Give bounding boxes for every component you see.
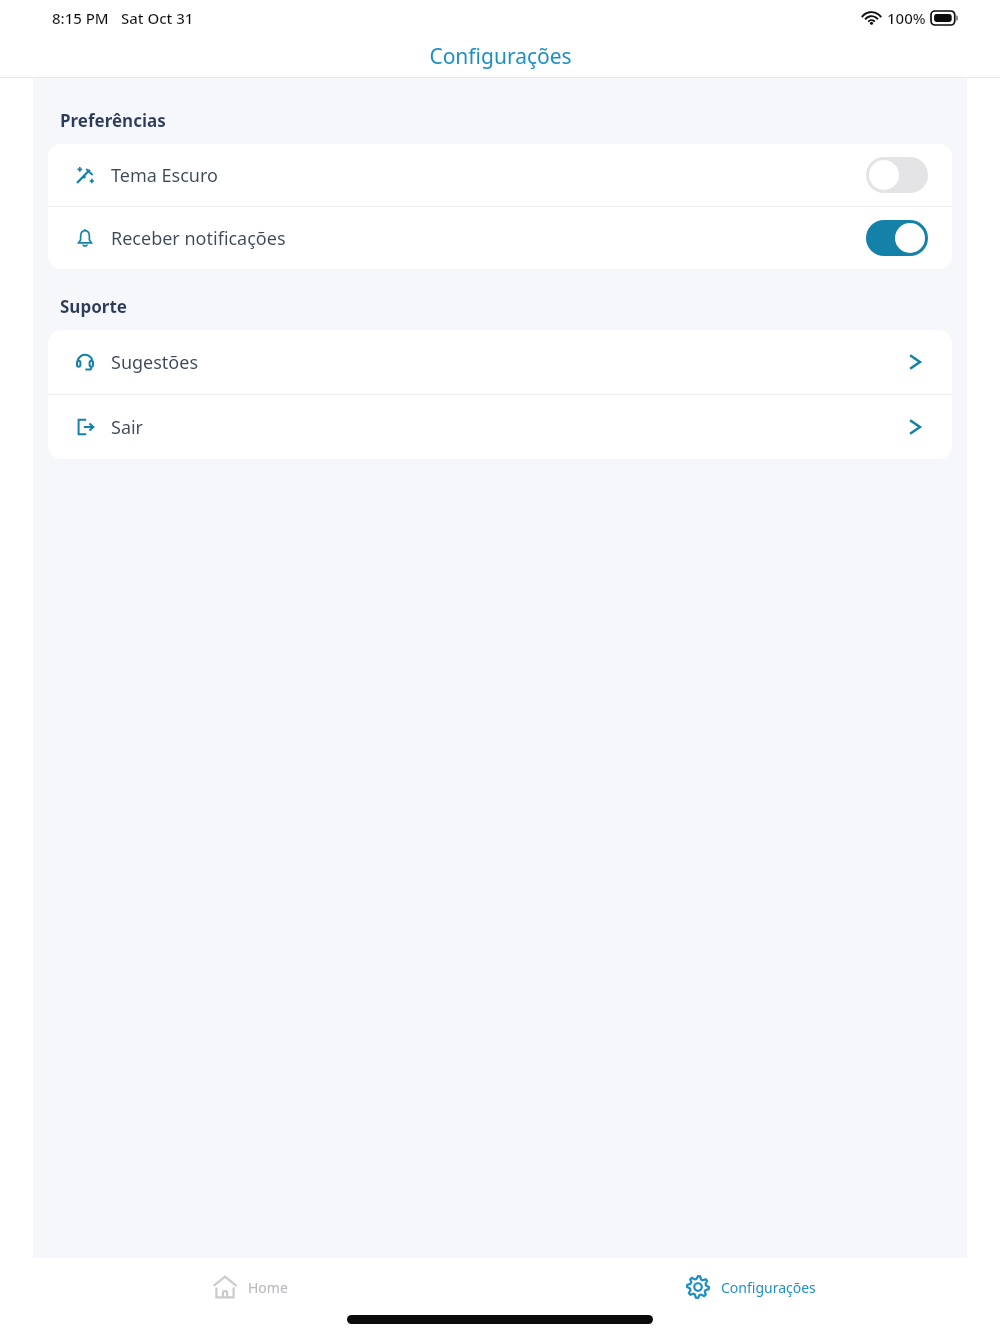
button[interactable]: Sair — [48, 395, 952, 459]
button[interactable]: Off — [866, 157, 928, 193]
button[interactable]: Receber notificações — [48, 207, 952, 269]
staticText: Home — [248, 1278, 288, 1297]
button[interactable]: Tema Escuro — [48, 144, 952, 206]
button[interactable]: Home — [0, 1258, 500, 1316]
staticText: Preferências — [60, 109, 166, 132]
staticText: Suporte — [60, 295, 127, 318]
staticText: Tema Escuro — [111, 163, 218, 188]
button[interactable]: On — [866, 220, 928, 256]
staticText: 100% — [887, 8, 926, 28]
staticText: Sat Oct 31 — [121, 8, 194, 28]
staticText: Sugestões — [111, 350, 199, 375]
button[interactable]: Sugestões — [48, 330, 952, 394]
staticText: 8:15 PM — [52, 8, 109, 28]
staticText: Configurações — [721, 1278, 816, 1297]
staticText: Receber notificações — [111, 226, 286, 251]
staticText: Sair — [111, 415, 144, 440]
button[interactable]: Configurações — [500, 1258, 1000, 1316]
staticText: Configurações — [429, 42, 572, 71]
